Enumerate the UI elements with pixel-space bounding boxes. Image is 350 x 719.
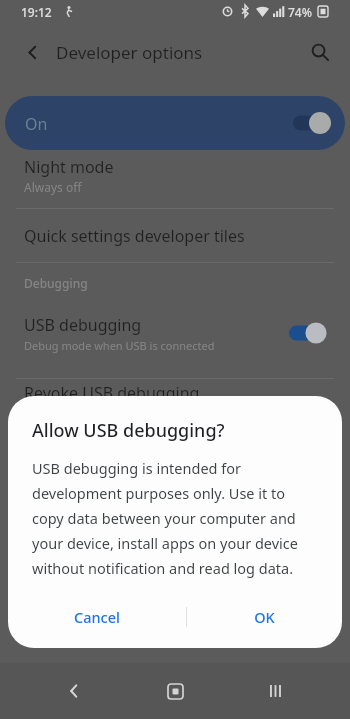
staticText: Debugging (24, 275, 88, 291)
staticText: Debug mode when USB is connected (24, 338, 215, 353)
staticText: OK (254, 607, 275, 627)
button[interactable]: Revoke USB debugging (0, 379, 350, 419)
button[interactable]: Cancel (8, 596, 186, 638)
staticText: USB debugging (24, 314, 142, 336)
staticText: 74% (288, 4, 312, 20)
button[interactable]: Quick settings developer tiles (0, 209, 350, 262)
staticText: Cancel (74, 607, 120, 627)
staticText: Always off (24, 179, 82, 195)
staticText: Quick settings developer tiles (24, 225, 245, 247)
button[interactable]: Back (47, 664, 101, 718)
staticText: Revoke USB debugging (24, 382, 200, 404)
button[interactable]: Recents (249, 664, 303, 718)
button[interactable]: Home (148, 664, 202, 718)
button[interactable]: Search (302, 34, 338, 70)
staticText: On (25, 113, 48, 135)
button[interactable]: Night mode (0, 158, 350, 208)
button[interactable]: USB debugging (0, 305, 350, 370)
button[interactable]: Back (14, 34, 50, 70)
staticText: Allow USB debugging? (32, 418, 225, 443)
button[interactable]: OK (187, 596, 342, 638)
staticText: USB debugging is intended for developmen… (32, 458, 320, 578)
staticText: 19:12 (21, 4, 52, 20)
button[interactable]: On (5, 96, 345, 150)
staticText: Night mode (24, 156, 114, 178)
staticText: Developer options (56, 41, 203, 64)
